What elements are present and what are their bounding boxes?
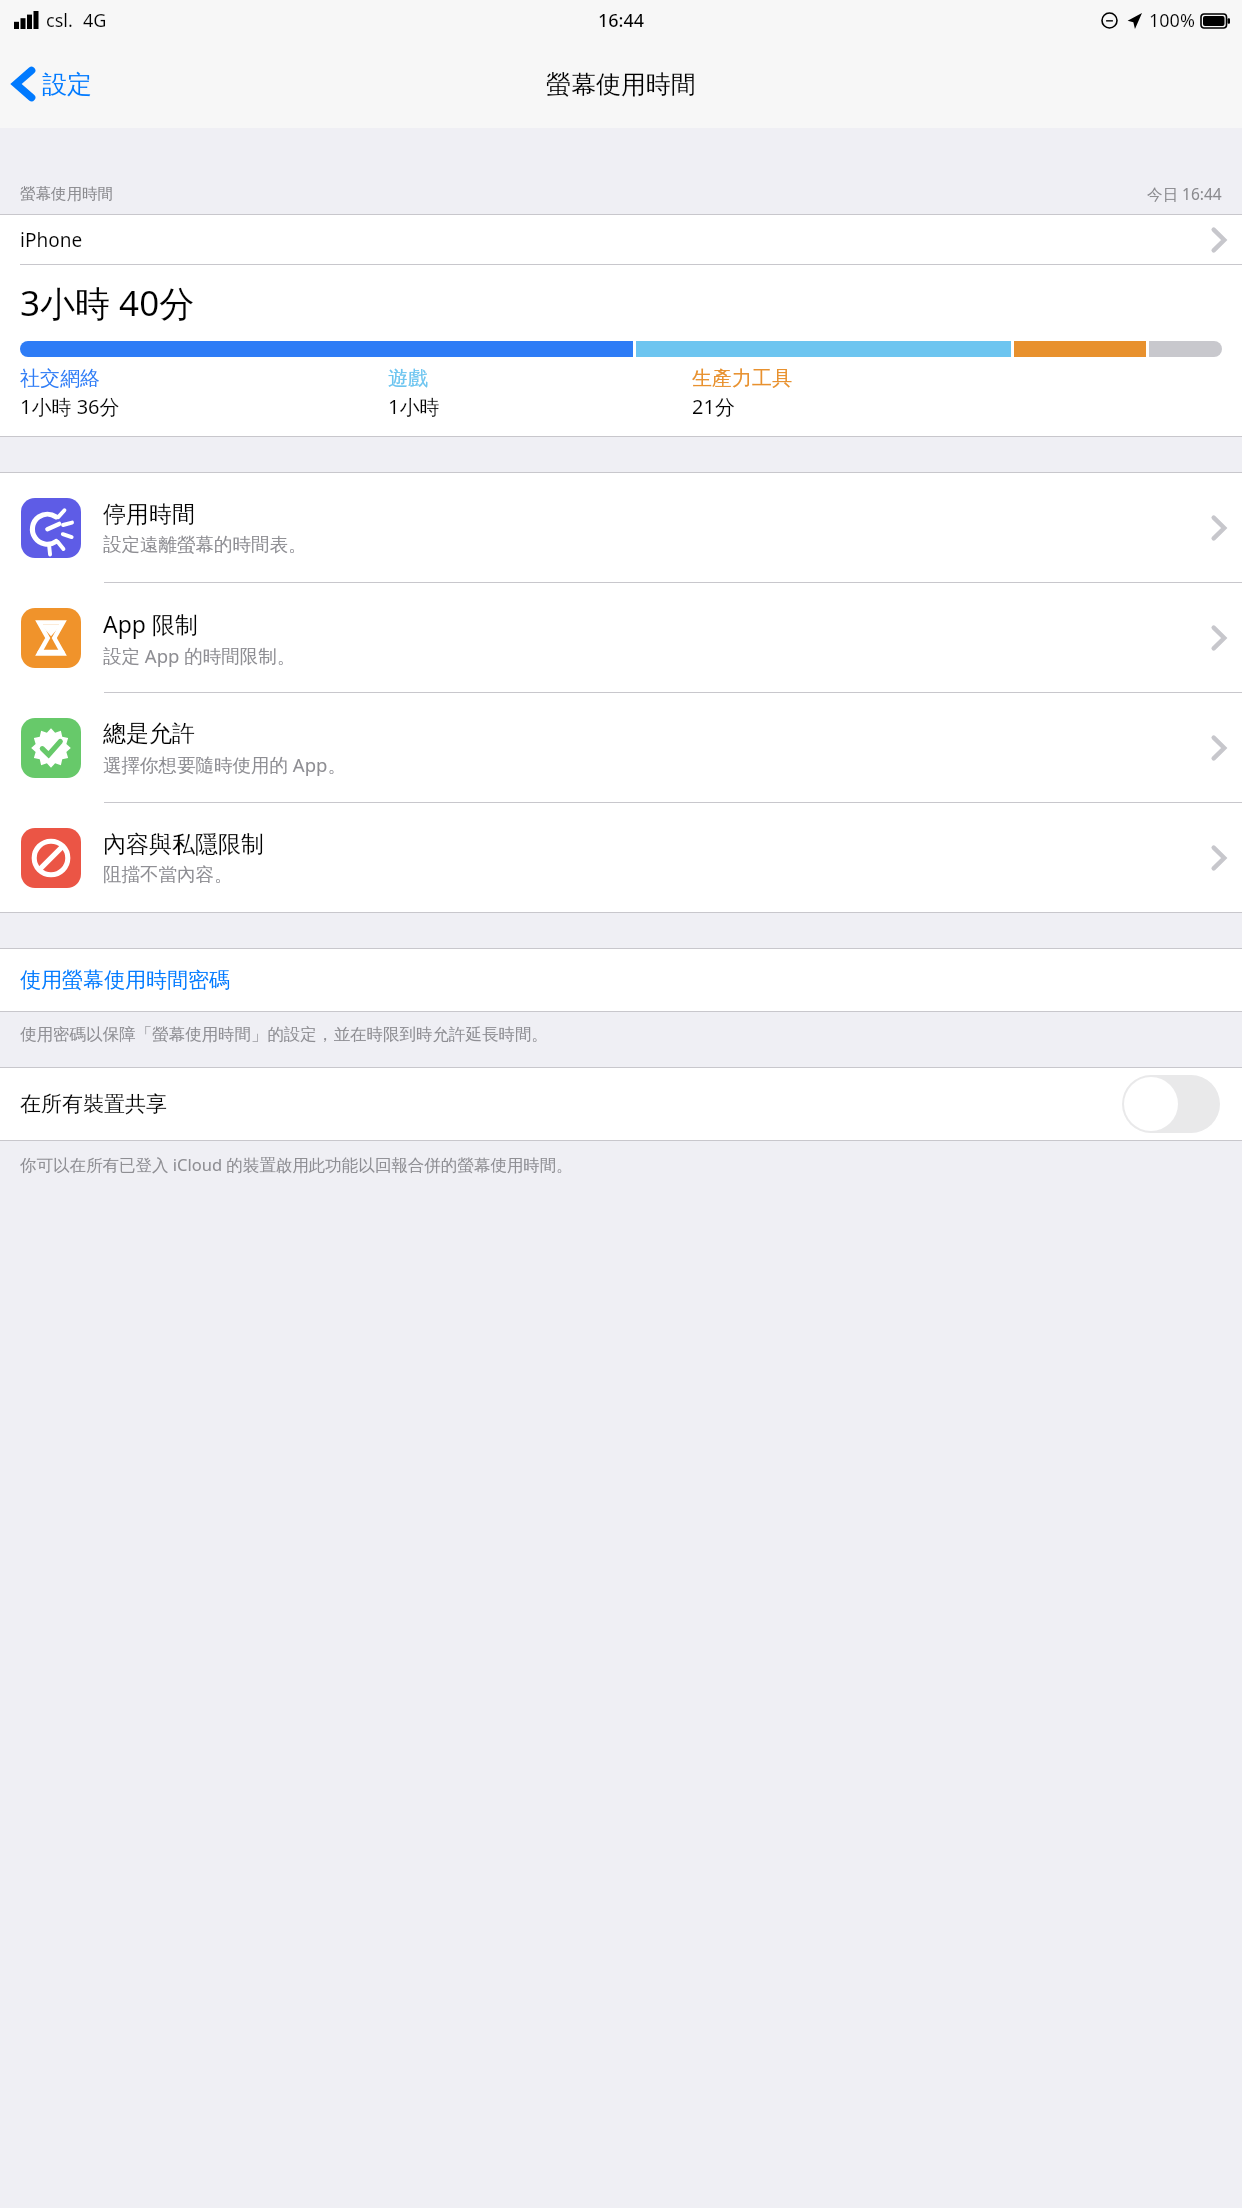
staticText: 16:44 — [598, 8, 645, 33]
button[interactable]: 使用螢幕使用時間密碼 — [0, 949, 1242, 1011]
staticText: 1小時 — [388, 393, 440, 420]
staticText: csl. — [46, 8, 73, 33]
button[interactable]: App 限制 — [0, 583, 1242, 692]
staticText: 遊戲 — [388, 366, 428, 391]
staticText: 21分 — [692, 393, 735, 420]
button[interactable]: iPhone — [0, 215, 1242, 264]
button[interactable]: 內容與私隱限制 — [0, 803, 1242, 912]
staticText: 總是允許 — [103, 719, 195, 748]
other: More — [1211, 735, 1226, 761]
button[interactable]: 停用時間 — [0, 473, 1242, 582]
staticText: 今日 16:44 — [1147, 183, 1222, 204]
staticText: 使用螢幕使用時間密碼 — [20, 967, 230, 993]
staticText: 你可以在所有已登入 iCloud 的裝置啟用此功能以回報合併的螢幕使用時間。 — [20, 1153, 573, 1176]
staticText: 100% — [1149, 8, 1195, 33]
staticText: 使用密碼以保障「螢幕使用時間」的設定，並在時限到時允許延長時間。 — [20, 1024, 548, 1045]
other: More — [1211, 845, 1226, 871]
staticText: 在所有裝置共享 — [20, 1091, 167, 1117]
other: More — [1211, 515, 1226, 541]
staticText: 選擇你想要隨時使用的 App。 — [103, 752, 346, 777]
staticText: 內容與私隱限制 — [103, 830, 264, 859]
staticText: 螢幕使用時間 — [20, 184, 113, 204]
staticText: 4G — [83, 8, 107, 33]
staticText: 社交網絡 — [20, 366, 100, 391]
staticText: 設定遠離螢幕的時間表。 — [103, 533, 307, 556]
staticText: 阻擋不當內容。 — [103, 863, 233, 886]
staticText: 設定 — [42, 69, 92, 100]
button[interactable]: 在所有裝置共享 — [1122, 1075, 1220, 1133]
staticText: iPhone — [20, 227, 83, 253]
button[interactable]: 總是允許 — [0, 693, 1242, 802]
staticText: 3小時 40分 — [20, 279, 195, 327]
button[interactable]: 設定 — [0, 61, 104, 107]
other: More — [1211, 625, 1226, 651]
button[interactable]: 在所有裝置共享 — [0, 1068, 1242, 1140]
staticText: 設定 App 的時間限制。 — [103, 643, 296, 668]
staticText: 螢幕使用時間 — [546, 69, 696, 100]
other: More — [1211, 227, 1226, 253]
staticText: 1小時 36分 — [20, 393, 120, 420]
staticText: App 限制 — [103, 608, 198, 639]
staticText: 生產力工具 — [692, 366, 792, 391]
staticText: 停用時間 — [103, 500, 195, 529]
